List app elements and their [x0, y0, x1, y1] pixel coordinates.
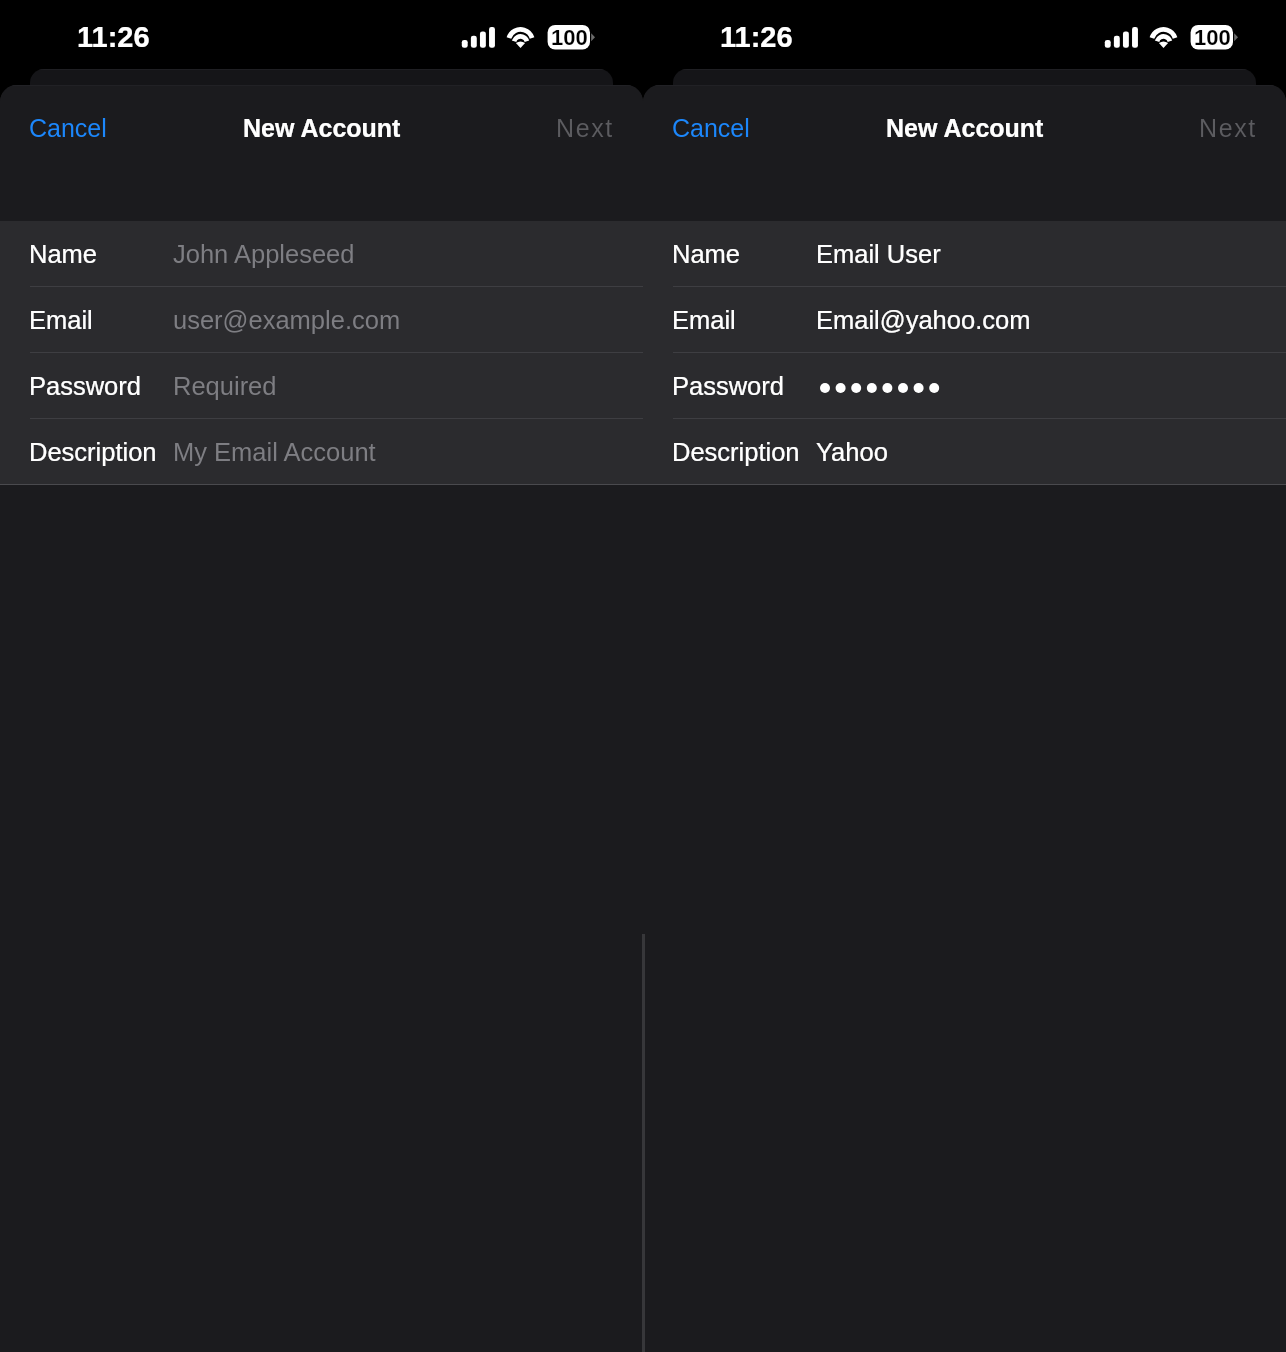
- other: Cellular, Wi-Fi and battery status: [455, 18, 600, 58]
- button[interactable]: Password: [0, 353, 643, 418]
- staticText: New Account: [886, 114, 1044, 142]
- button[interactable]: Email: [643, 287, 1286, 352]
- staticText: Cancel: [672, 114, 750, 142]
- other: Password hidden: [820, 378, 940, 398]
- button[interactable]: Next: [544, 102, 626, 154]
- staticText: 11:26: [77, 21, 150, 53]
- staticText: Password: [29, 372, 141, 400]
- staticText: 100: [1194, 25, 1231, 50]
- staticText: Password: [672, 372, 784, 400]
- staticText: user@example.com: [173, 306, 401, 334]
- button[interactable]: Description: [0, 419, 643, 484]
- button[interactable]: Cancel: [660, 102, 762, 154]
- staticText: Yahoo: [816, 438, 888, 466]
- staticText: Cancel: [29, 114, 107, 142]
- staticText: 11:26: [720, 21, 793, 53]
- staticText: Next: [556, 114, 614, 142]
- button[interactable]: Email: [0, 287, 643, 352]
- staticText: My Email Account: [173, 438, 376, 466]
- other: Cellular, Wi-Fi and battery status: [1098, 18, 1243, 58]
- staticText: 100: [551, 25, 588, 50]
- staticText: Email User: [816, 240, 941, 268]
- staticText: Name: [672, 240, 741, 268]
- button[interactable]: Cancel: [17, 102, 119, 154]
- button[interactable]: Password: [643, 353, 1286, 418]
- staticText: Email: [672, 306, 736, 334]
- staticText: Next: [1199, 114, 1257, 142]
- staticText: Description: [29, 438, 157, 466]
- staticText: Required: [173, 372, 277, 400]
- button[interactable]: Name: [643, 221, 1286, 286]
- button[interactable]: Description: [643, 419, 1286, 484]
- staticText: John Appleseed: [173, 240, 355, 268]
- staticText: Email@yahoo.com: [816, 306, 1031, 334]
- staticText: Email: [29, 306, 93, 334]
- staticText: New Account: [243, 114, 401, 142]
- button[interactable]: Next: [1187, 102, 1269, 154]
- button[interactable]: Name: [0, 221, 643, 286]
- staticText: Description: [672, 438, 800, 466]
- staticText: Name: [29, 240, 98, 268]
